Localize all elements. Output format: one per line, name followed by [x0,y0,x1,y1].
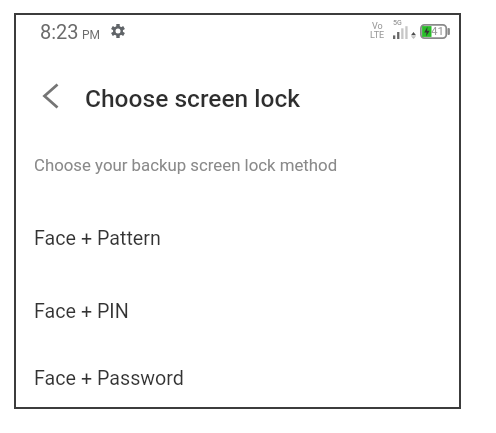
button[interactable]: Face + Pattern [14,210,461,266]
staticText: Choose screen lock [85,84,301,113]
button[interactable]: Face + Password [14,350,461,406]
staticText: LTE [370,30,385,41]
staticText: 8:23 [40,20,79,43]
button[interactable] [29,74,73,118]
staticText: 5G [393,19,402,27]
staticText: Face + Password [34,367,184,390]
staticText: Choose your backup screen lock method [34,155,338,175]
staticText: 41 [431,24,444,37]
staticText: Face + Pattern [34,227,161,250]
button[interactable]: Face + PIN [14,283,461,339]
staticText: PM [79,28,101,42]
staticText: Vo [372,21,383,32]
staticText: Face + PIN [34,300,129,323]
